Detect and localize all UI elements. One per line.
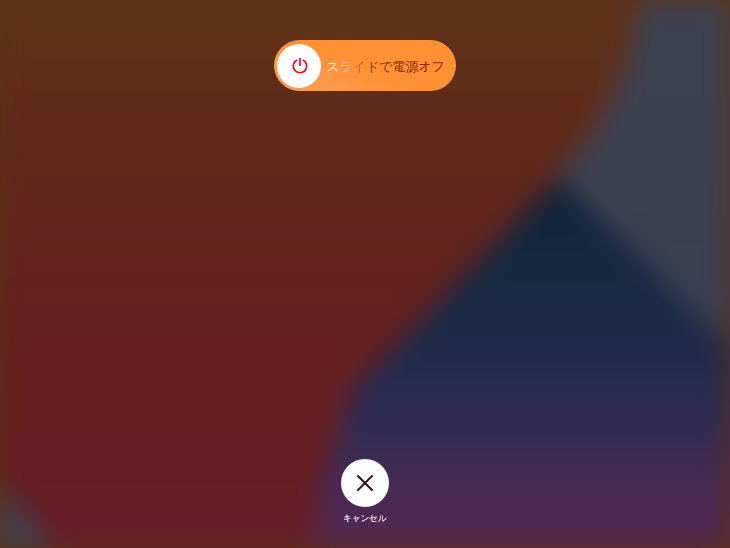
staticText: キャンセル [343,513,387,524]
staticText: スライドで電源オフ [326,58,446,74]
button[interactable]: スライドで電源オフ [274,40,456,91]
button[interactable]: Cancel [341,459,389,524]
